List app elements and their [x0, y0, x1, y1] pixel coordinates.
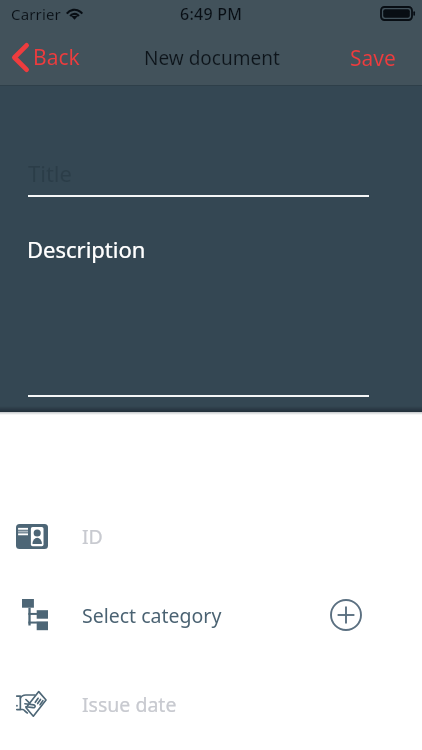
button[interactable]: Add category [322, 591, 370, 639]
button[interactable]: Select category [0, 587, 422, 643]
staticText: Save [350, 44, 396, 73]
staticText: Description [27, 234, 146, 264]
staticText: Issue date [82, 691, 177, 718]
button[interactable]: Back [6, 39, 90, 76]
staticText: Carrier [11, 4, 61, 24]
staticText: Select category [82, 602, 222, 629]
button[interactable]: Save [338, 39, 410, 78]
staticText: 6:49 PM [180, 3, 243, 25]
staticText: Title [28, 158, 72, 188]
button[interactable]: ID [0, 508, 422, 564]
staticText: ID [82, 523, 103, 550]
staticText: Back [33, 43, 80, 72]
button[interactable]: Issue date [0, 676, 422, 732]
staticText: New document [144, 45, 280, 71]
